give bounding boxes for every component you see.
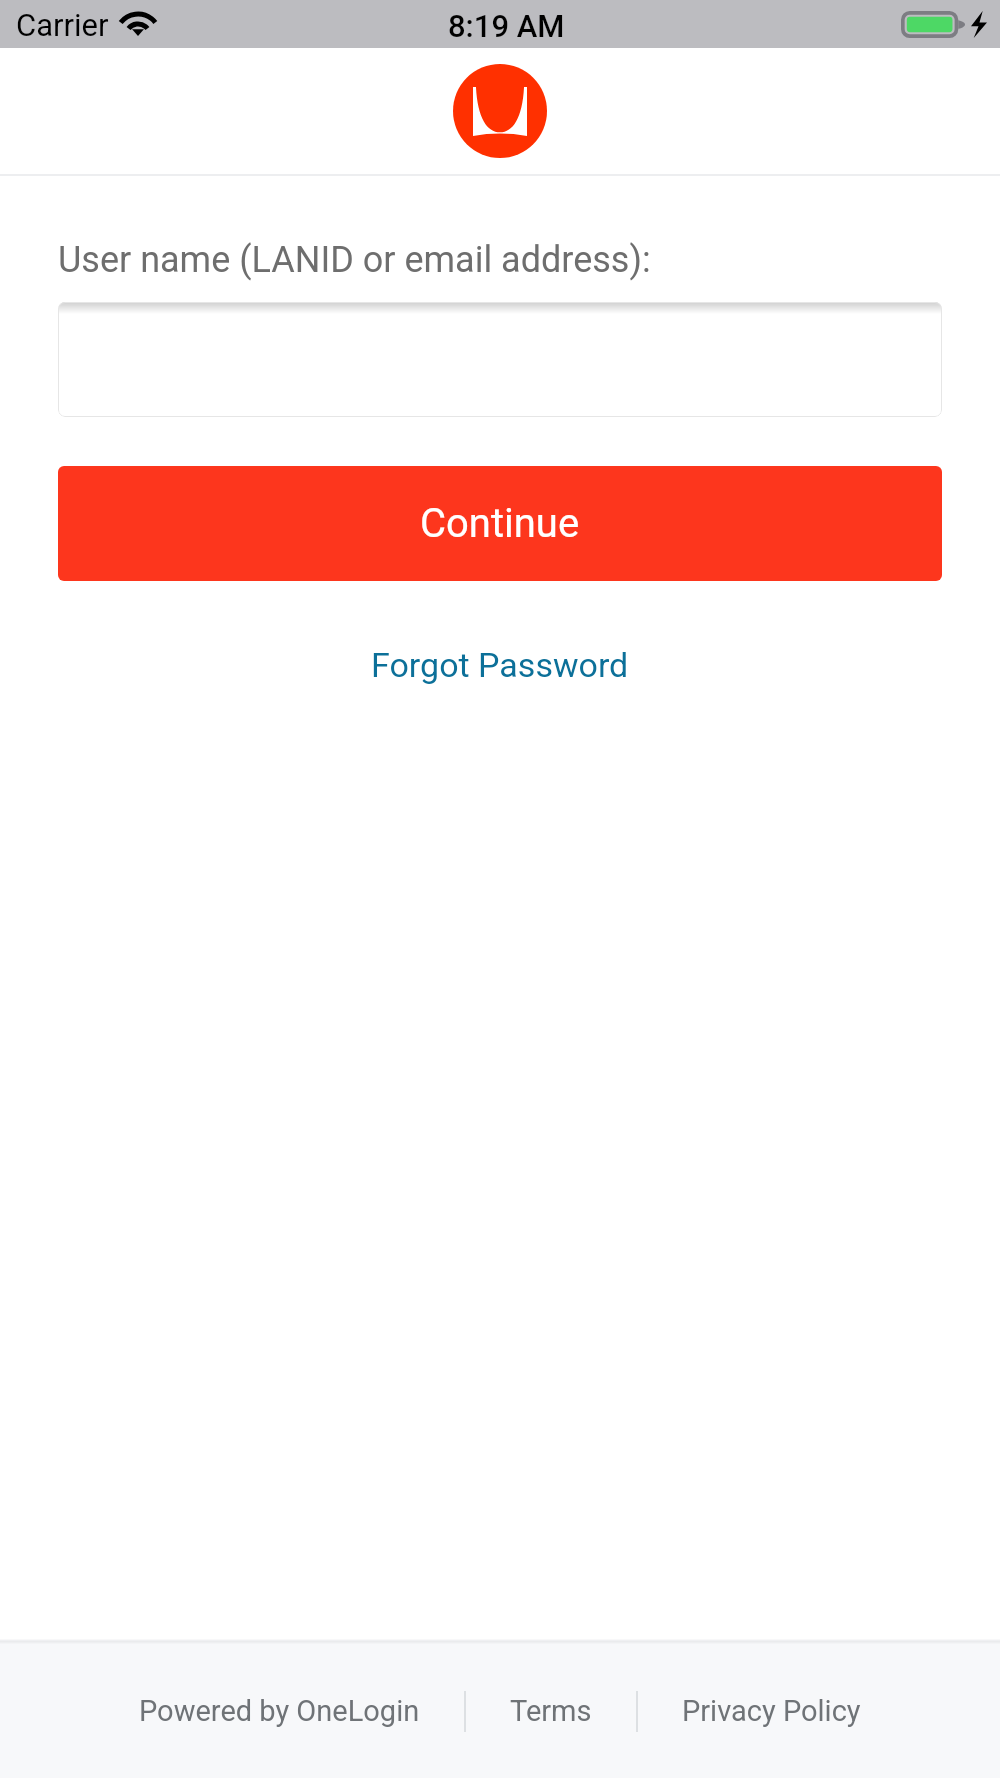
staticText: Forgot Password: [371, 645, 629, 685]
staticText: Terms: [510, 1694, 592, 1728]
button[interactable]: Privacy Policy: [668, 1680, 875, 1742]
button[interactable]: User name (LANID or email address): [58, 302, 942, 417]
staticText: Continue: [420, 500, 580, 547]
staticText: 8:19 AM: [448, 8, 565, 44]
staticText: Powered by OneLogin: [139, 1694, 420, 1728]
staticText: Privacy Policy: [682, 1694, 861, 1728]
button[interactable]: Forgot Password: [353, 633, 647, 697]
button[interactable]: Terms: [496, 1680, 606, 1742]
button[interactable]: Powered by OneLogin: [125, 1680, 434, 1742]
staticText: User name (LANID or email address):: [58, 239, 651, 281]
button[interactable]: Continue: [58, 466, 942, 581]
staticText: Carrier: [16, 7, 109, 43]
